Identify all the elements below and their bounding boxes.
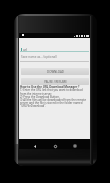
- staticText: Save name as... (optional): [21, 55, 57, 59]
- staticText: PAUSE / RESUME: [44, 80, 67, 84]
- button[interactable]: url: [21, 47, 89, 52]
- button[interactable]: Home: [51, 142, 59, 150]
- staticText: How to Use the URL Download Manager ?: [20, 85, 80, 89]
- button[interactable]: Recent apps: [71, 142, 79, 150]
- button[interactable]: DOWNLOAD: [21, 68, 89, 75]
- button[interactable]: Back: [31, 142, 39, 150]
- button[interactable]: PAUSE / RESUME: [21, 78, 89, 85]
- staticText: DOWNLOAD: [47, 70, 64, 74]
- staticText: url: [23, 48, 27, 52]
- staticText: 1) Enter the URL link that you want to d…: [20, 88, 89, 108]
